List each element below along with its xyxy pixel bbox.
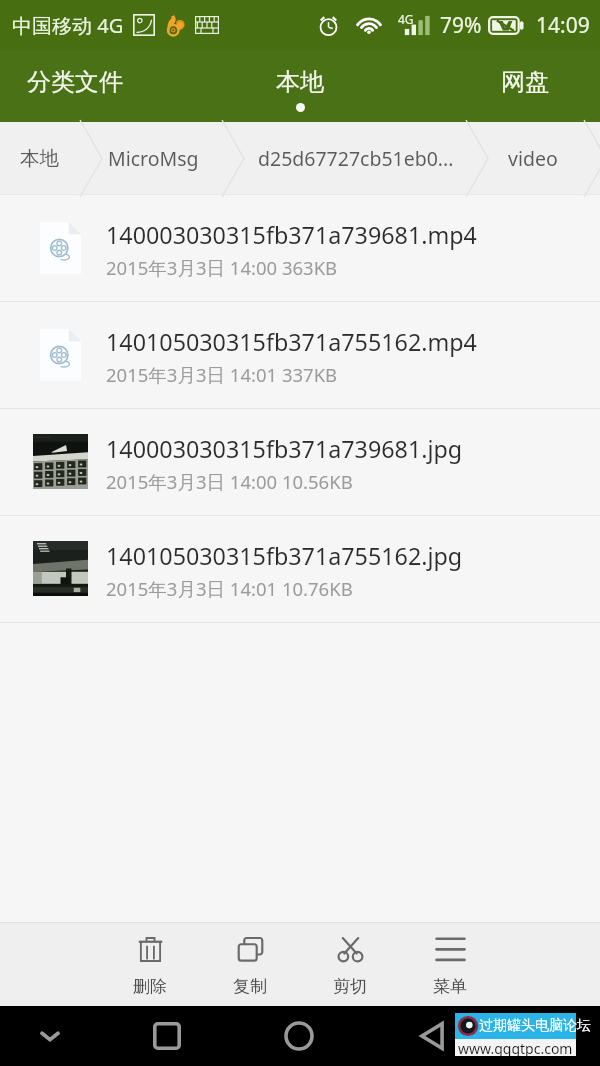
staticText: 分类文件 [27,67,123,97]
staticText: video [508,145,558,172]
staticText: 140105030315fb371a755162.mp4 [106,326,477,358]
staticText: 2015年3月3日 14:01 337KB [106,362,338,387]
button[interactable]: 140003030315fb371a739681.mp4 [0,195,600,302]
staticText: 本地 [20,146,59,171]
staticText: 79% [440,11,482,40]
button[interactable]: Home [269,1006,329,1066]
staticText: 中国移动 4G [12,12,124,39]
button[interactable]: 140105030315fb371a755162.mp4 [0,302,600,409]
button[interactable]: 本地 [20,122,59,195]
button[interactable]: 删除 [100,923,200,1006]
staticText: 140003030315fb371a739681.mp4 [106,219,477,251]
button[interactable]: 网盘 [450,50,600,122]
staticText: 剪切 [333,976,367,997]
button[interactable]: d25d67727cb51eb0... [258,122,454,195]
staticText: 2015年3月3日 14:01 10.76KB [106,576,353,601]
staticText: 复制 [233,976,267,997]
staticText: 删除 [133,976,167,997]
button[interactable]: 分类文件 [0,50,150,122]
staticText: 14:09 [536,11,590,40]
button[interactable]: Recent apps [137,1006,197,1066]
button[interactable]: 剪切 [300,923,400,1006]
button[interactable]: 本地 [150,50,450,122]
staticText: 过期罐头电脑论坛 [479,1017,591,1035]
staticText: www.gqgtpc.com [458,1039,573,1056]
staticText: 140003030315fb371a739681.jpg [106,433,463,465]
button[interactable]: Hide keyboard [20,1006,80,1066]
staticText: 本地 [276,67,324,97]
button[interactable]: video [508,122,558,195]
staticText: 4G [398,11,414,27]
button[interactable]: 140003030315fb371a739681.jpg [0,409,600,516]
button[interactable]: 复制 [200,923,300,1006]
staticText: d25d67727cb51eb0... [258,145,454,172]
button[interactable]: MicroMsg [108,122,199,195]
staticText: 菜单 [433,976,467,997]
staticText: MicroMsg [108,145,199,172]
button[interactable]: 菜单 [400,923,500,1006]
staticText: 网盘 [501,67,549,97]
button[interactable]: 140105030315fb371a755162.jpg [0,516,600,623]
staticText: 2015年3月3日 14:00 10.56KB [106,469,353,494]
staticText: 2015年3月3日 14:00 363KB [106,255,338,280]
staticText: 140105030315fb371a755162.jpg [106,540,463,572]
button[interactable]: Back [402,1006,462,1066]
